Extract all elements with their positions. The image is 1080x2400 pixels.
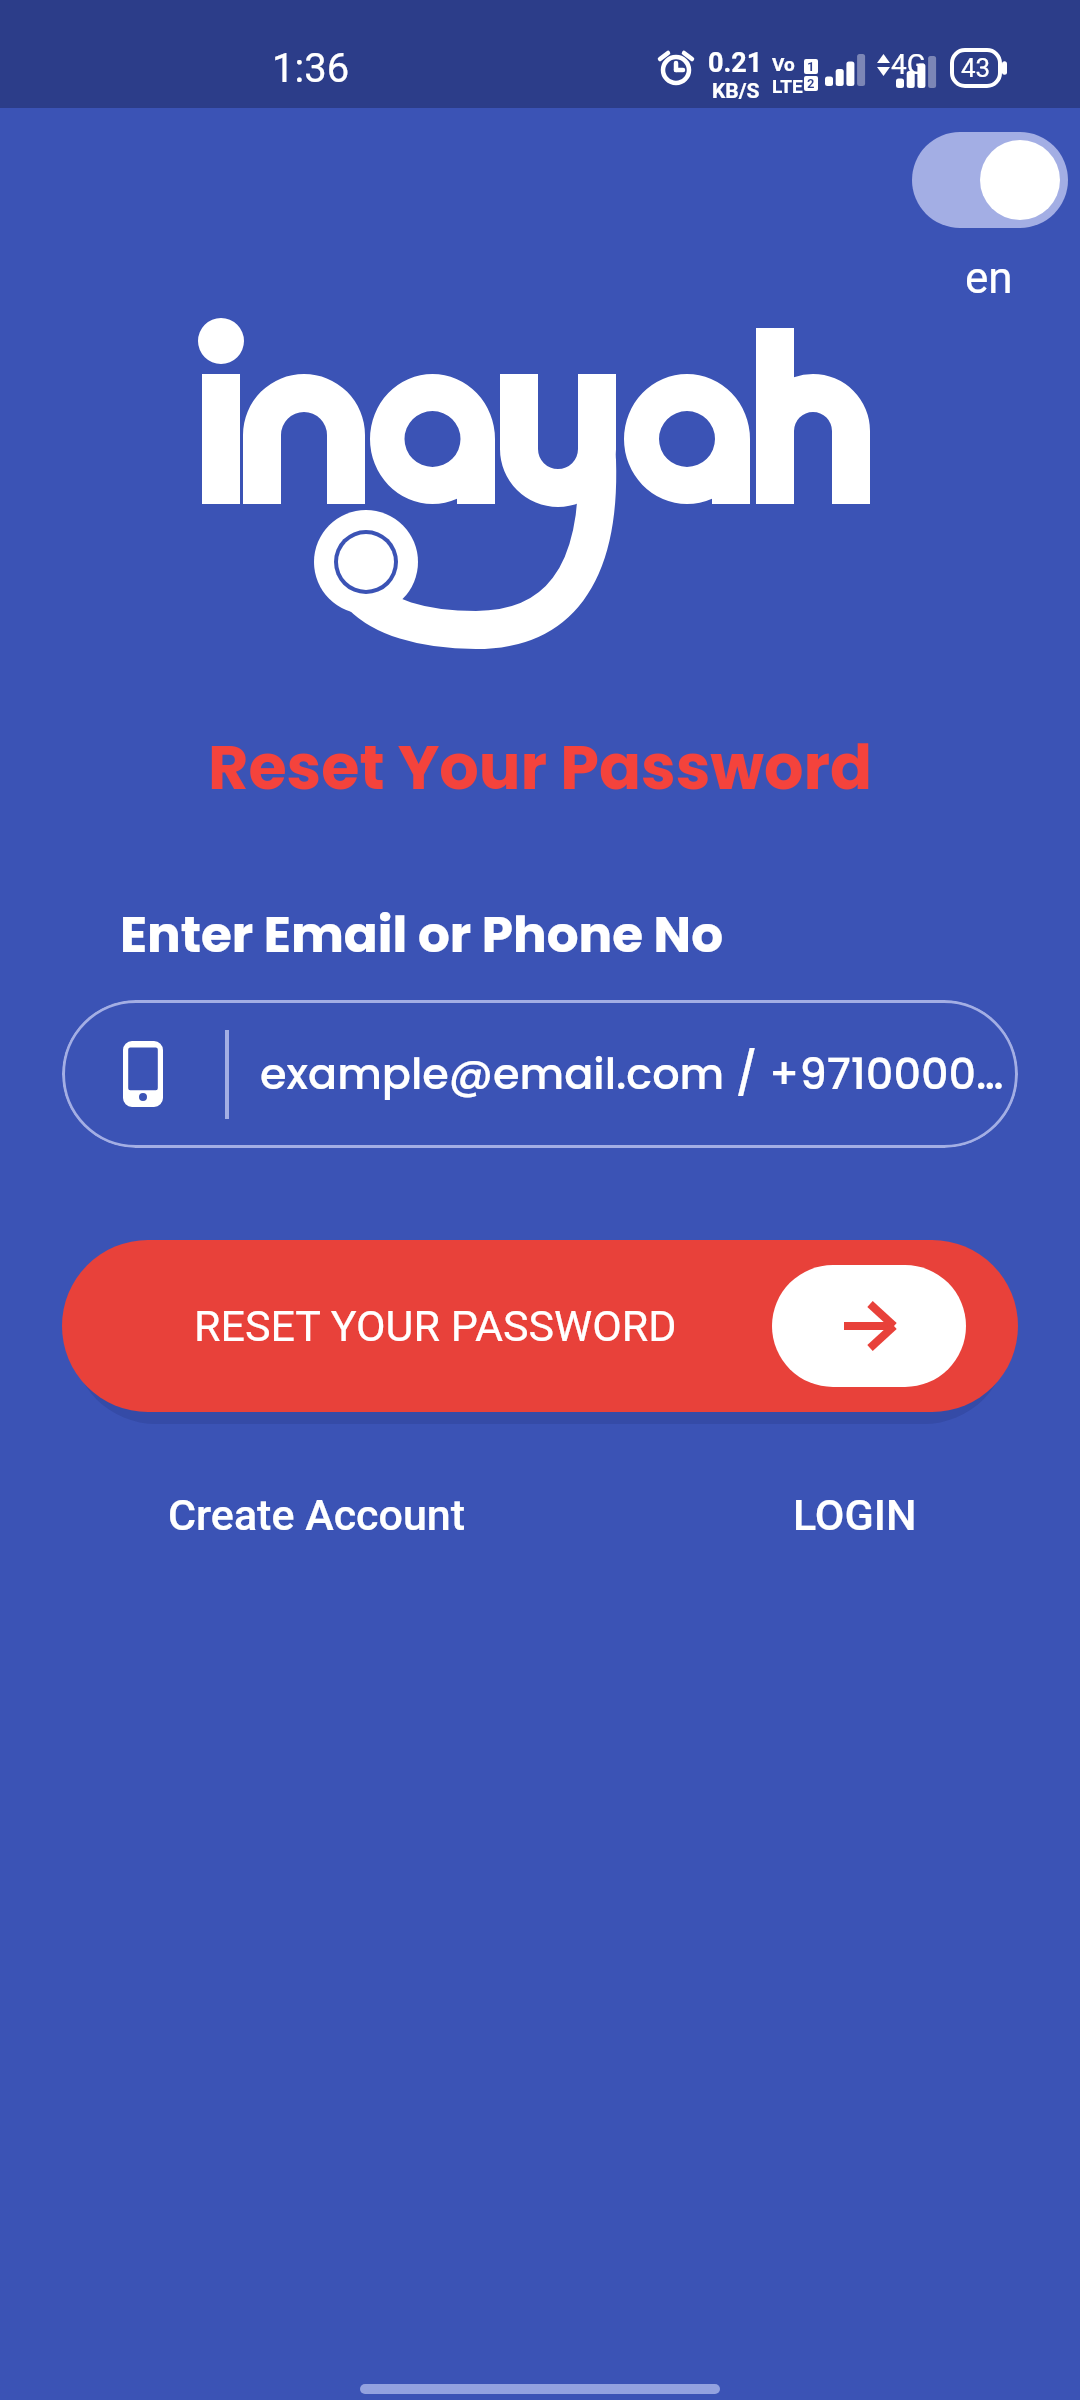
- staticText: 1:36: [272, 45, 350, 92]
- staticText: en: [965, 252, 1013, 304]
- button[interactable]: RESET YOUR PASSWORD: [62, 1240, 1018, 1412]
- staticText: 2: [807, 76, 815, 91]
- button[interactable]: example@email.com / +9710000…: [62, 1000, 1018, 1148]
- staticText: 0.21: [708, 47, 763, 79]
- staticText: Reset Your Password: [208, 724, 873, 811]
- staticText: Create Account: [168, 1490, 466, 1540]
- button[interactable]: Switch language: [912, 132, 1068, 228]
- button[interactable]: LOGIN: [793, 1490, 917, 1540]
- staticText: RESET YOUR PASSWORD: [194, 1301, 677, 1351]
- staticText: LOGIN: [793, 1490, 917, 1540]
- staticText: LTE: [772, 75, 803, 97]
- staticText: example@email.com / +9710000…: [260, 1044, 1004, 1104]
- staticText: KB/S: [712, 79, 760, 104]
- button[interactable]: Create Account: [168, 1490, 466, 1540]
- staticText: Enter Email or Phone No: [120, 900, 724, 970]
- staticText: 4G: [891, 48, 926, 81]
- staticText: Vo: [772, 53, 795, 75]
- staticText: 43: [961, 53, 991, 83]
- staticText: 1: [807, 59, 815, 74]
